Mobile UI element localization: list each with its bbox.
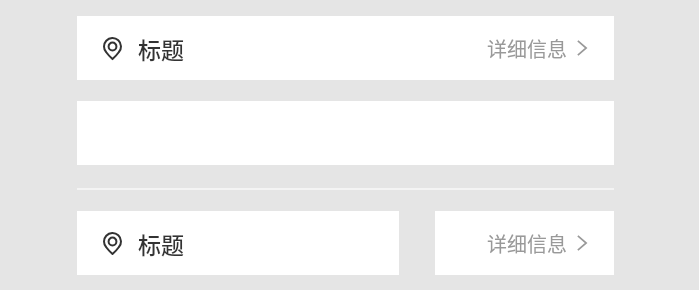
other: 位置 bbox=[103, 232, 122, 255]
other: 位置 bbox=[103, 37, 122, 60]
staticText: 标题 bbox=[138, 32, 184, 65]
button[interactable]: 详细信息 bbox=[435, 211, 614, 275]
staticText: 详细信息 bbox=[487, 34, 567, 63]
button[interactable]: 位置 bbox=[77, 16, 614, 80]
button[interactable]: 详细信息 bbox=[487, 16, 587, 80]
staticText: 标题 bbox=[138, 227, 184, 260]
button[interactable]: 位置 bbox=[77, 211, 399, 275]
staticText: 详细信息 bbox=[487, 229, 567, 258]
